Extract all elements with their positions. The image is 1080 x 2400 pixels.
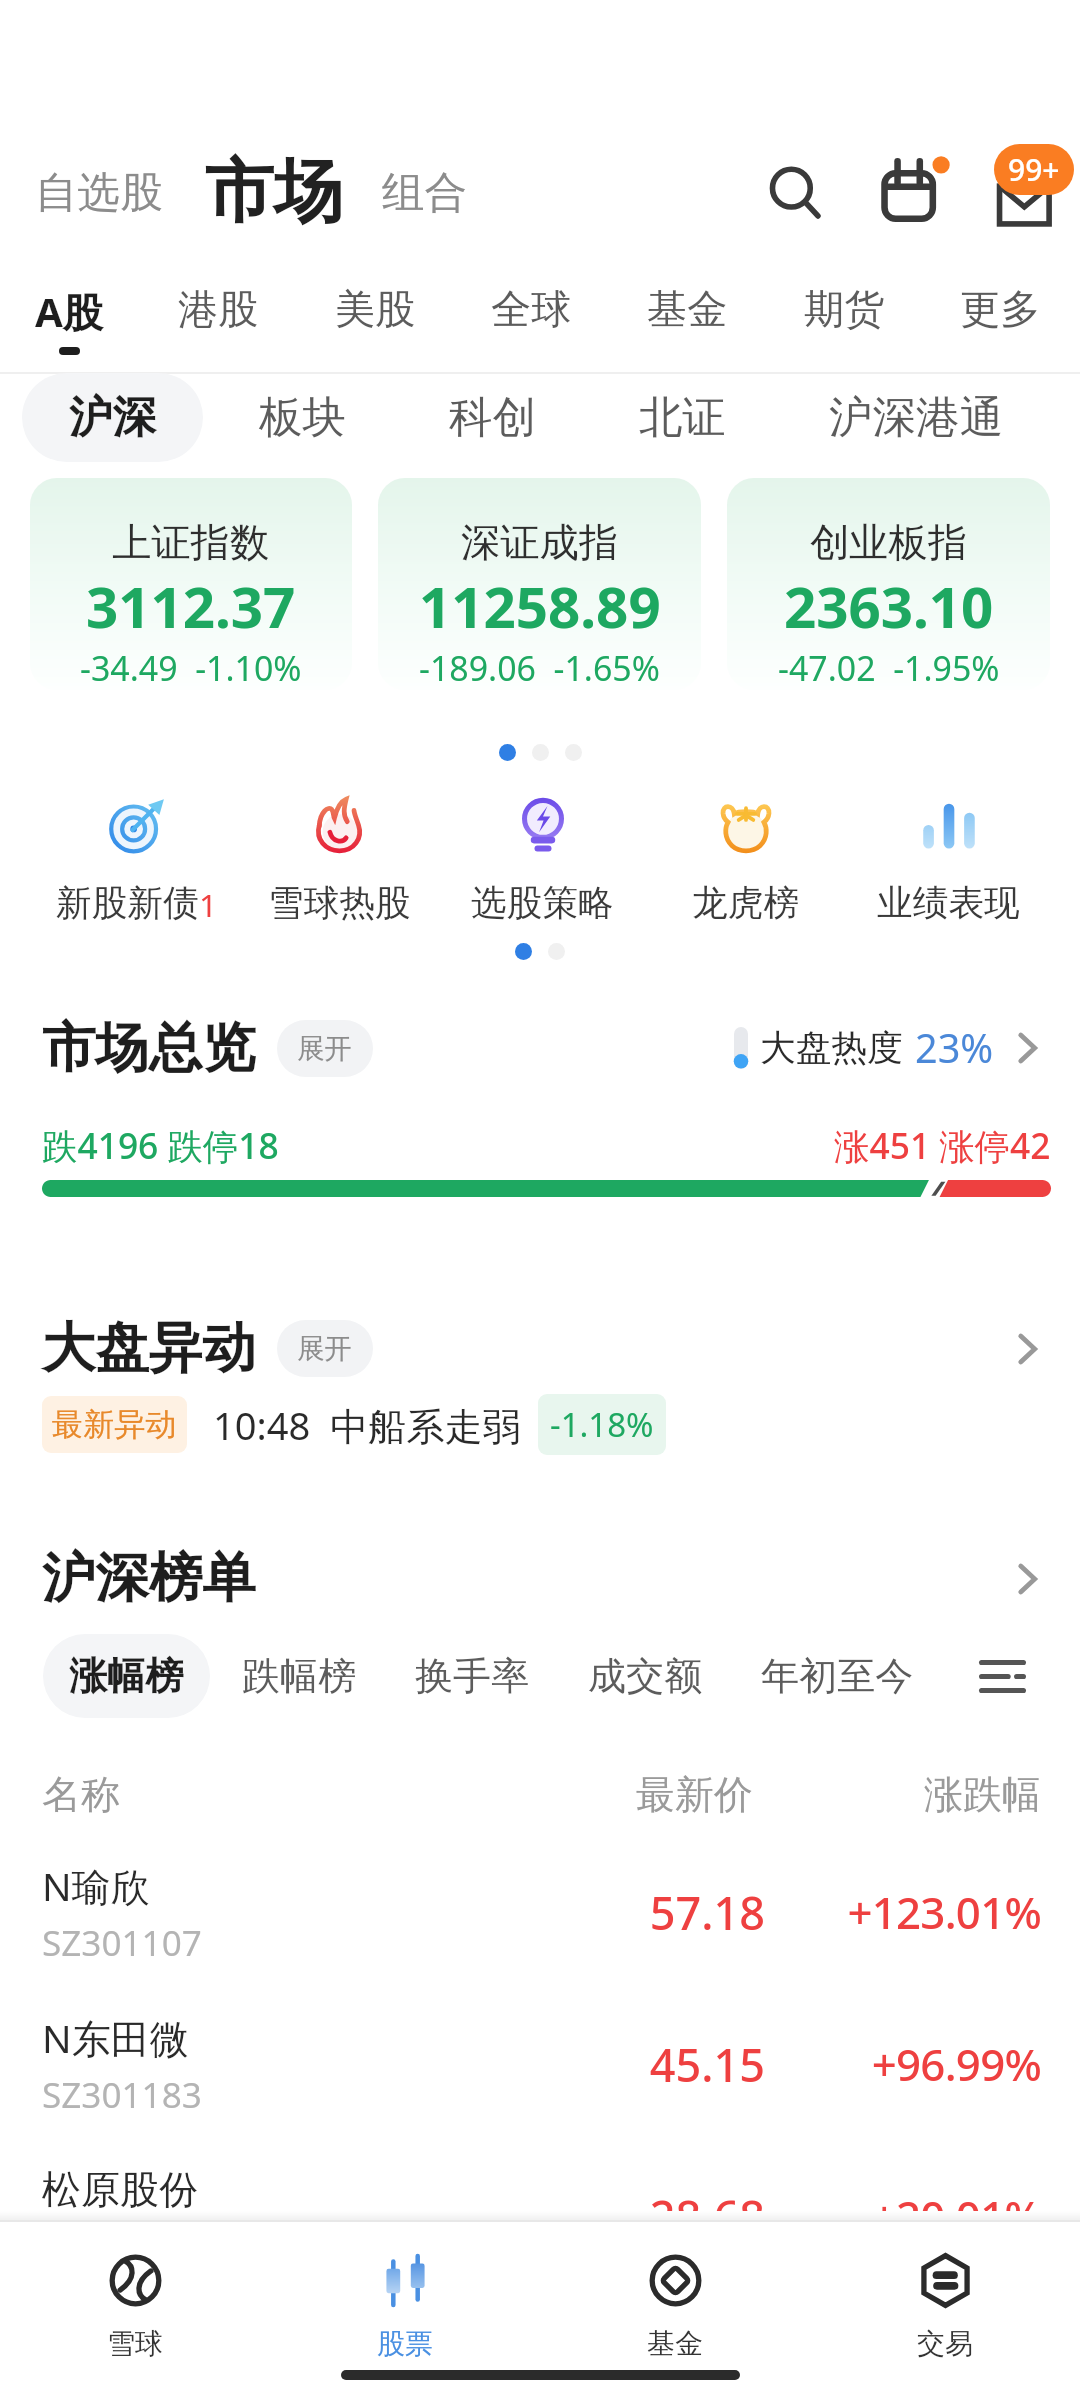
button[interactable]: 上证指数 xyxy=(30,478,352,690)
button[interactable]: 沪深 xyxy=(22,373,203,462)
staticText: A股 xyxy=(35,284,103,339)
staticText: 雪球 xyxy=(107,2326,163,2361)
button[interactable]: 大盘热度 xyxy=(734,1012,1051,1084)
button[interactable]: Sort options xyxy=(963,1637,1041,1715)
button[interactable]: 交易 xyxy=(810,2254,1080,2361)
staticText: 市场 xyxy=(205,149,343,236)
staticText: +123.01% xyxy=(765,1882,1041,1942)
button[interactable]: Calendar xyxy=(873,152,954,233)
button[interactable]: 大盘异动 xyxy=(42,1315,1051,1382)
button[interactable]: 港股 xyxy=(154,278,283,357)
button[interactable]: 龙虎榜 xyxy=(644,797,847,926)
button[interactable]: 创业板指 xyxy=(727,478,1050,690)
button[interactable]: 沪深榜单 xyxy=(42,1545,1051,1612)
staticText: 美股 xyxy=(335,284,416,335)
button[interactable]: Search xyxy=(756,154,834,232)
staticText: 深证成指 xyxy=(461,518,619,568)
button[interactable]: 跌幅榜 xyxy=(216,1634,383,1718)
button[interactable]: 沪深港通 xyxy=(782,373,1050,462)
staticText: -47.02 -1.95% xyxy=(778,645,1000,690)
staticText: 北证 xyxy=(639,390,726,445)
button[interactable]: 北证 xyxy=(592,373,773,462)
button[interactable]: 年初至今 xyxy=(735,1634,940,1718)
staticText: 23% xyxy=(915,1021,994,1075)
button[interactable]: 展开 xyxy=(277,1020,373,1077)
button[interactable]: 科创 xyxy=(402,373,583,462)
button[interactable]: 组合 xyxy=(376,151,474,235)
staticText: 期货 xyxy=(804,284,885,335)
staticText: 科创 xyxy=(449,390,536,445)
staticText: -189.06 -1.65% xyxy=(419,645,660,690)
button[interactable]: 雪球 xyxy=(0,2254,270,2361)
staticText: 创业板指 xyxy=(810,518,968,568)
button[interactable]: 成交额 xyxy=(562,1634,729,1718)
button[interactable]: 涨幅榜 xyxy=(43,1634,210,1718)
staticText: 新股新债 xyxy=(56,881,199,926)
staticText: 龙虎榜 xyxy=(692,881,800,926)
staticText: 最新异动 xyxy=(52,1405,177,1444)
button[interactable]: 美股 xyxy=(311,278,440,357)
staticText: 雪球热股 xyxy=(268,881,411,926)
button[interactable]: 股票 xyxy=(270,2254,540,2361)
staticText: 涨451 涨停42 xyxy=(834,1121,1051,1169)
staticText: 股票 xyxy=(377,2326,433,2361)
staticText: 涨跌幅 xyxy=(753,1770,1041,1819)
button[interactable]: A股 xyxy=(11,278,127,361)
button[interactable]: N瑜欣 xyxy=(0,1836,1080,1988)
staticText: +96.99% xyxy=(765,2034,1041,2094)
button[interactable]: 松原股份 xyxy=(0,2140,1080,2292)
staticText: SZ301107 xyxy=(42,1918,202,1966)
staticText: 展开 xyxy=(297,1331,353,1366)
button[interactable]: 基金 xyxy=(540,2254,810,2361)
staticText: +20.01% xyxy=(765,2186,1041,2246)
button[interactable]: 深证成指 xyxy=(378,478,701,690)
staticText: SZ301183 xyxy=(42,2070,202,2118)
button[interactable]: 更多 xyxy=(936,278,1065,357)
staticText: -1.18% xyxy=(550,1402,654,1447)
button[interactable]: 最新异动 xyxy=(42,1394,666,1455)
button[interactable]: 期货 xyxy=(780,278,909,357)
button[interactable]: 基金 xyxy=(623,278,752,357)
staticText: 换手率 xyxy=(415,1652,530,1700)
staticText: 跌幅榜 xyxy=(242,1652,357,1700)
staticText: N东田微 xyxy=(42,2011,189,2064)
staticText: 跌4196 跌停18 xyxy=(42,1121,279,1169)
staticText: 板块 xyxy=(259,390,346,445)
staticText: 年初至今 xyxy=(761,1652,914,1700)
staticText: 选股策略 xyxy=(471,881,614,926)
button[interactable]: 新股新债 xyxy=(36,797,238,926)
staticText: 全球 xyxy=(491,284,572,335)
button[interactable]: 自选股 xyxy=(29,151,169,235)
button[interactable]: Messages xyxy=(984,148,1074,238)
staticText: 2363.10 xyxy=(784,568,994,645)
staticText: 基金 xyxy=(647,2326,703,2361)
staticText: 57.18 xyxy=(564,1882,765,1943)
button[interactable]: 市场 xyxy=(199,143,349,242)
staticText: 更多 xyxy=(960,284,1041,335)
staticText: 沪深港通 xyxy=(829,390,1003,445)
staticText: 成交额 xyxy=(588,1652,703,1700)
staticText: 市场总览 xyxy=(42,1015,256,1082)
staticText: 组合 xyxy=(382,166,468,220)
staticText: 11258.89 xyxy=(419,568,661,645)
staticText: 沪深榜单 xyxy=(42,1545,256,1612)
staticText: -34.49 -1.10% xyxy=(80,645,302,690)
staticText: 松原股份 xyxy=(42,2165,198,2214)
staticText: 自选股 xyxy=(35,166,163,220)
staticText: 大盘异动 xyxy=(42,1315,256,1382)
button[interactable]: N东田微 xyxy=(0,1988,1080,2140)
staticText: 交易 xyxy=(917,2326,973,2361)
button[interactable]: 换手率 xyxy=(389,1634,556,1718)
staticText: 沪深 xyxy=(69,390,156,445)
staticText: 45.15 xyxy=(564,2034,765,2095)
button[interactable]: 选股策略 xyxy=(441,797,644,926)
staticText: 3112.37 xyxy=(86,568,296,645)
button[interactable]: 板块 xyxy=(212,373,393,462)
staticText: 28.68 xyxy=(564,2186,765,2247)
staticText: 涨幅榜 xyxy=(69,1652,184,1700)
button[interactable]: 业绩表现 xyxy=(847,797,1050,926)
button[interactable]: 全球 xyxy=(467,278,596,357)
staticText: 99+ xyxy=(1008,149,1060,190)
button[interactable]: 雪球热股 xyxy=(238,797,441,926)
staticText: 大盘热度 xyxy=(760,1026,903,1071)
